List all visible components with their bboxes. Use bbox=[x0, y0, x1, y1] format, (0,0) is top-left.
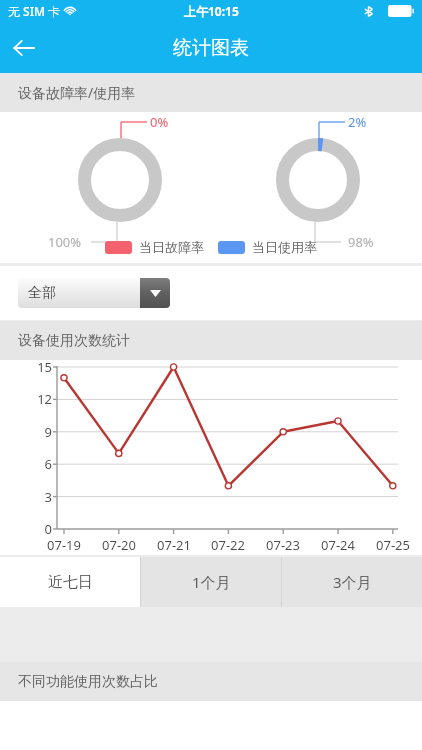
staticText: 全部 bbox=[28, 284, 56, 302]
staticText: 0 bbox=[30, 520, 52, 538]
staticText: 0% bbox=[150, 113, 169, 131]
button[interactable]: 近七日 bbox=[0, 557, 140, 607]
staticText: 无 SIM 卡 bbox=[8, 3, 61, 19]
staticText: 当日故障率 bbox=[139, 239, 204, 255]
staticText: 15 bbox=[30, 358, 52, 376]
button[interactable]: 1个月 bbox=[141, 557, 281, 607]
staticText: 统计图表 bbox=[173, 36, 249, 60]
staticText: 07-20 bbox=[95, 536, 143, 554]
staticText: 07-23 bbox=[259, 536, 307, 554]
staticText: 07-22 bbox=[204, 536, 252, 554]
button[interactable]: 全部 bbox=[18, 278, 170, 308]
staticText: 07-21 bbox=[150, 536, 198, 554]
staticText: 3个月 bbox=[333, 572, 372, 592]
staticText: 100% bbox=[48, 233, 82, 251]
staticText: 07-25 bbox=[369, 536, 417, 554]
button[interactable]: Back bbox=[0, 24, 48, 72]
staticText: 2% bbox=[348, 113, 367, 131]
staticText: 上午10:15 bbox=[184, 3, 239, 19]
staticText: 1个月 bbox=[192, 572, 231, 592]
staticText: 当日使用率 bbox=[252, 239, 317, 255]
staticText: 近七日 bbox=[48, 573, 93, 592]
staticText: 设备使用次数统计 bbox=[18, 332, 130, 350]
button[interactable]: 3个月 bbox=[282, 557, 422, 607]
staticText: 9 bbox=[30, 423, 52, 441]
staticText: 12 bbox=[30, 390, 52, 408]
staticText: 07-19 bbox=[40, 536, 88, 554]
staticText: 3 bbox=[30, 488, 52, 506]
staticText: 不同功能使用次数占比 bbox=[18, 673, 158, 691]
staticText: 设备故障率/使用率 bbox=[18, 83, 136, 102]
staticText: 6 bbox=[30, 455, 52, 473]
staticText: 07-24 bbox=[314, 536, 362, 554]
staticText: 98% bbox=[348, 233, 374, 251]
